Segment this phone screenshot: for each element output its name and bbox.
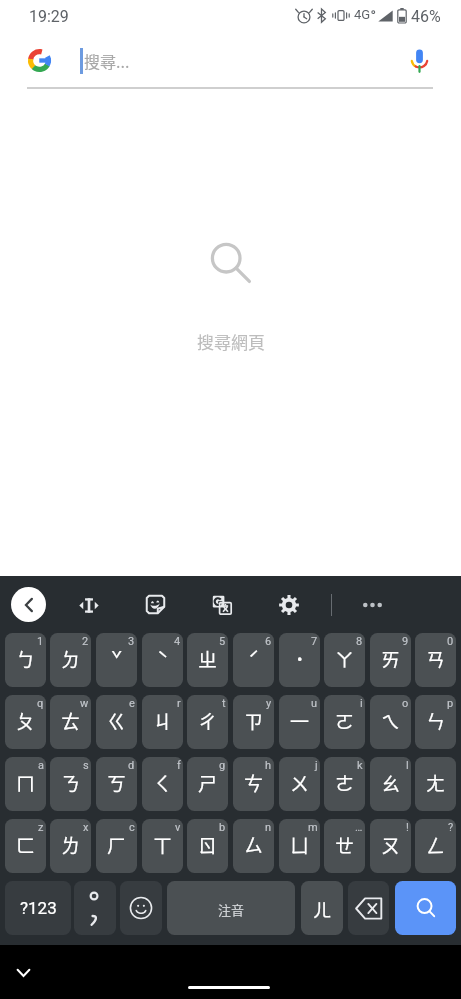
staticText: i: [360, 697, 363, 710]
staticText: ㄙ: [244, 831, 264, 859]
button[interactable]: h: [233, 757, 274, 811]
staticText: ㄗ: [244, 707, 264, 735]
staticText: ㄐ: [153, 707, 173, 735]
button[interactable]: ?123: [5, 881, 71, 935]
staticText: …: [355, 821, 363, 834]
button[interactable]: Search: [395, 881, 456, 935]
button[interactable]: k: [324, 757, 365, 811]
staticText: ㄠ: [381, 769, 401, 797]
button[interactable]: o: [370, 695, 411, 749]
staticText: 2: [82, 635, 89, 648]
staticText: ㄎ: [107, 769, 127, 797]
button[interactable]: 7: [279, 633, 320, 687]
staticText: ㄚ: [335, 645, 355, 673]
button[interactable]: e: [96, 695, 137, 749]
button[interactable]: [74, 881, 116, 935]
staticText: ㄑ: [153, 769, 173, 797]
button[interactable]: 3: [96, 633, 137, 687]
button[interactable]: Backspace: [348, 881, 389, 935]
staticText: ㄆ: [16, 707, 36, 735]
button[interactable]: c: [96, 819, 137, 873]
button[interactable]: 9: [370, 633, 411, 687]
staticText: ˙: [295, 645, 305, 673]
button[interactable]: s: [50, 757, 91, 811]
button[interactable]: f: [142, 757, 183, 811]
button[interactable]: Translate: [205, 588, 239, 622]
button[interactable]: 2: [50, 633, 91, 687]
button[interactable]: Settings: [272, 588, 306, 622]
button[interactable]: x: [50, 819, 91, 873]
button[interactable]: i: [324, 695, 365, 749]
staticText: ㄢ: [426, 645, 446, 673]
button[interactable]: Stickers: [138, 588, 172, 622]
staticText: ㄈ: [16, 831, 36, 859]
button[interactable]: a: [5, 757, 46, 811]
staticText: 7: [311, 635, 318, 648]
staticText: ?123: [20, 898, 57, 918]
button[interactable]: j: [279, 757, 320, 811]
staticText: ㄨ: [290, 769, 310, 797]
staticText: ㄜ: [335, 769, 355, 797]
staticText: ㄦ: [313, 896, 331, 922]
button[interactable]: 1: [5, 633, 46, 687]
button[interactable]: d: [96, 757, 137, 811]
button[interactable]: More options: [355, 588, 389, 622]
staticText: 9: [402, 635, 409, 648]
button[interactable]: y: [233, 695, 274, 749]
button[interactable]: Back: [11, 587, 46, 622]
staticText: o: [402, 697, 409, 710]
button[interactable]: z: [5, 819, 46, 873]
button[interactable]: m: [279, 819, 320, 873]
button[interactable]: n: [233, 819, 274, 873]
staticText: ㄉ: [61, 645, 81, 673]
button[interactable]: u: [279, 695, 320, 749]
button[interactable]: 注音: [167, 881, 295, 935]
staticText: x: [83, 821, 89, 834]
button[interactable]: !: [370, 819, 411, 873]
staticText: 46%: [411, 7, 441, 26]
button[interactable]: w: [50, 695, 91, 749]
staticText: k: [357, 759, 363, 772]
button[interactable]: r: [142, 695, 183, 749]
staticText: 4G: [354, 7, 371, 22]
staticText: v: [175, 821, 181, 834]
button[interactable]: Hide keyboard: [6, 956, 40, 990]
button[interactable]: 6: [233, 633, 274, 687]
button[interactable]: 5: [187, 633, 228, 687]
button[interactable]: v: [142, 819, 183, 873]
button[interactable]: Emoji: [120, 881, 162, 935]
button[interactable]: 0: [415, 633, 456, 687]
staticText: ˋ: [157, 645, 169, 673]
button[interactable]: t: [187, 695, 228, 749]
staticText: 搜尋網頁: [197, 329, 265, 354]
button[interactable]: ?: [415, 819, 456, 873]
other: Voice search: [411, 49, 428, 72]
button[interactable]: q: [5, 695, 46, 749]
staticText: r: [177, 697, 181, 710]
staticText: t: [222, 697, 226, 710]
staticText: !: [406, 821, 409, 834]
button[interactable]: b: [187, 819, 228, 873]
staticText: a: [38, 759, 44, 772]
button[interactable]: l: [370, 757, 411, 811]
staticText: y: [266, 697, 272, 710]
staticText: 6: [265, 635, 272, 648]
staticText: ㄡ: [381, 831, 401, 859]
staticText: ㄏ: [107, 831, 127, 859]
button[interactable]: Move cursor: [72, 588, 106, 622]
button[interactable]: 8: [324, 633, 365, 687]
staticText: 19:29: [29, 7, 69, 26]
staticText: ㄅ: [16, 645, 36, 673]
staticText: n: [265, 821, 272, 834]
staticText: e: [129, 697, 135, 710]
staticText: ㄒ: [153, 831, 173, 859]
button[interactable]: ㄤ: [415, 757, 456, 811]
button[interactable]: ㄦ: [301, 881, 343, 935]
button[interactable]: p: [415, 695, 456, 749]
button[interactable]: …: [324, 819, 365, 873]
button[interactable]: 4: [142, 633, 183, 687]
button[interactable]: g: [187, 757, 228, 811]
staticText: 一: [290, 707, 310, 735]
staticText: ㄘ: [244, 769, 264, 797]
staticText: ㄍ: [107, 707, 127, 735]
